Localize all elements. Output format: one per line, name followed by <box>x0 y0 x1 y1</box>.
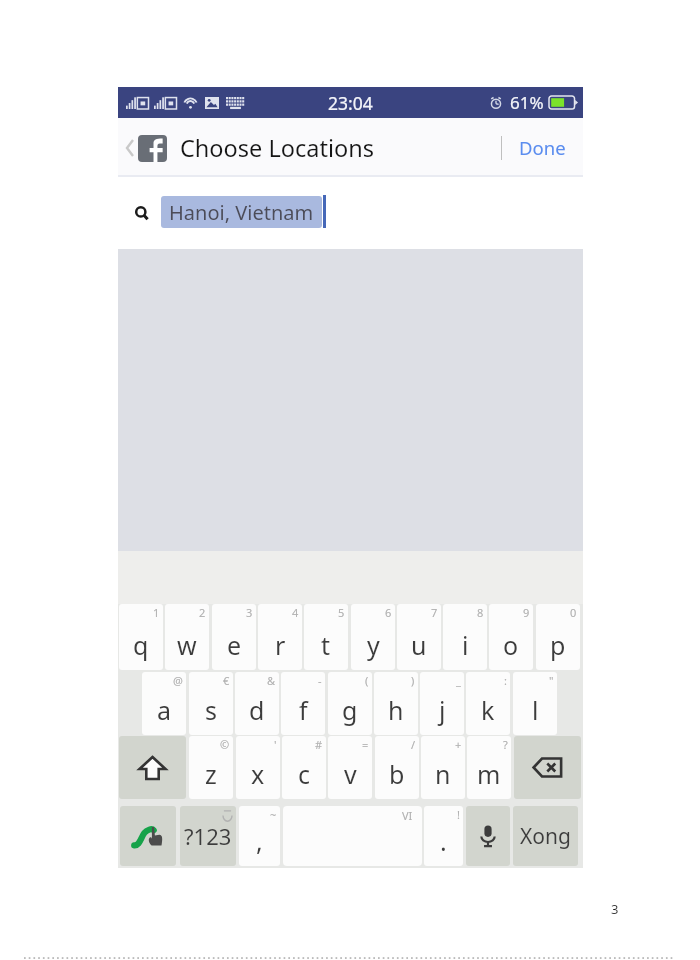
staticText: Done <box>519 135 566 160</box>
staticText: 4 <box>292 605 299 620</box>
staticText: € <box>223 673 230 688</box>
button[interactable]: 9 <box>489 604 533 670</box>
staticText: 23:04 <box>328 91 373 115</box>
button[interactable]: ) <box>374 672 418 735</box>
staticText: g <box>342 693 358 727</box>
staticText: a <box>157 693 172 727</box>
button[interactable]: 5 <box>304 604 348 670</box>
button[interactable]: Done <box>501 118 583 177</box>
staticText: ~ <box>270 807 277 822</box>
staticText: r <box>275 628 286 662</box>
staticText: v <box>344 757 357 791</box>
staticText: + <box>455 737 462 752</box>
button[interactable]: & <box>235 672 279 735</box>
button[interactable]: Glide typing <box>120 806 176 866</box>
button[interactable]: : <box>466 672 510 735</box>
staticText: ? <box>503 737 508 752</box>
staticText: - <box>318 673 322 688</box>
staticText: n <box>435 757 451 791</box>
staticText: © <box>220 737 230 752</box>
staticText: q <box>133 628 149 662</box>
button[interactable]: ?123 <box>180 806 236 866</box>
button[interactable]: Xong <box>513 806 578 866</box>
button[interactable]: 2 <box>165 604 209 670</box>
button[interactable]: Choose Locations <box>138 132 374 164</box>
button[interactable]: ' <box>236 736 280 799</box>
staticText: 9 <box>523 605 530 620</box>
staticText: x <box>251 757 265 791</box>
button[interactable]: Shift <box>119 736 186 799</box>
staticText: 3 <box>246 605 253 620</box>
button[interactable]: @ <box>142 672 186 735</box>
staticText: l <box>532 693 539 727</box>
button[interactable]: ! <box>424 806 463 866</box>
staticText: ) <box>411 673 415 688</box>
staticText: k <box>481 693 495 727</box>
staticText: 8 <box>477 605 484 620</box>
staticText: 3 <box>611 900 619 918</box>
button[interactable]: + <box>421 736 465 799</box>
button[interactable]: = <box>328 736 372 799</box>
button[interactable]: " <box>513 672 557 735</box>
staticText: ! <box>457 807 460 822</box>
staticText: Choose Locations <box>180 132 374 164</box>
button[interactable]: Voice input <box>466 806 510 866</box>
button[interactable]: Backspace <box>514 736 581 799</box>
staticText: f <box>299 693 308 727</box>
button[interactable]: # <box>282 736 326 799</box>
button[interactable]: ~ <box>239 806 280 866</box>
staticText: d <box>249 693 265 727</box>
button[interactable]: 0 <box>536 604 580 670</box>
button[interactable]: _ <box>420 672 464 735</box>
button[interactable]: € <box>189 672 233 735</box>
staticText: h <box>388 693 404 727</box>
button[interactable]: Hanoi, Vietnam <box>161 196 322 228</box>
button[interactable]: - <box>281 672 325 735</box>
staticText: 0 <box>570 605 577 620</box>
staticText: y <box>367 628 380 662</box>
staticText: Xong <box>520 822 571 851</box>
button[interactable]: 8 <box>443 604 487 670</box>
staticText: @ <box>173 673 183 688</box>
staticText: = <box>362 737 369 752</box>
button[interactable]: © <box>189 736 233 799</box>
button[interactable]: Space <box>283 806 422 866</box>
staticText: # <box>315 737 323 752</box>
staticText: m <box>477 757 501 791</box>
staticText: , <box>256 824 263 858</box>
staticText: 61% <box>510 91 544 114</box>
button[interactable]: 4 <box>258 604 302 670</box>
staticText: 5 <box>338 605 345 620</box>
button[interactable]: 1 <box>119 604 163 670</box>
other: Search <box>135 206 148 220</box>
staticText: / <box>411 737 416 752</box>
staticText: & <box>267 673 276 688</box>
staticText: 1 <box>153 605 160 620</box>
staticText: w <box>177 628 197 662</box>
staticText: u <box>411 628 427 662</box>
staticText: 6 <box>385 605 392 620</box>
staticText: _ <box>456 673 461 688</box>
staticText: b <box>389 757 405 791</box>
staticText: c <box>298 757 311 791</box>
staticText: z <box>205 757 217 791</box>
staticText: e <box>227 628 242 662</box>
staticText: ( <box>365 673 369 688</box>
button[interactable]: Back <box>119 128 141 168</box>
staticText: s <box>205 693 217 727</box>
button[interactable]: ( <box>328 672 372 735</box>
button[interactable]: 7 <box>397 604 441 670</box>
staticText: Hanoi, Vietnam <box>169 199 314 226</box>
staticText: " <box>549 673 554 688</box>
staticText: ?123 <box>184 821 232 851</box>
staticText: i <box>462 628 469 662</box>
button[interactable]: ? <box>467 736 511 799</box>
staticText: VI <box>402 808 413 823</box>
button[interactable]: 3 <box>212 604 256 670</box>
staticText: t <box>321 628 331 662</box>
button[interactable]: / <box>375 736 419 799</box>
staticText: 2 <box>199 605 206 620</box>
staticText: j <box>439 693 446 727</box>
button[interactable]: 6 <box>351 604 395 670</box>
staticText: ' <box>274 737 277 752</box>
